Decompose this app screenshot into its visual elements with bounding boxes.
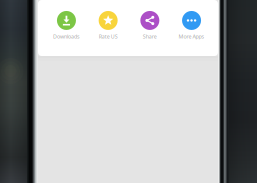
staticText: Share [143, 33, 157, 40]
button[interactable]: Rate US [87, 9, 129, 41]
staticText: Downloads [53, 33, 80, 40]
button[interactable]: Downloads [46, 9, 87, 41]
button[interactable]: More Apps [171, 9, 212, 41]
staticText: Rate US [99, 33, 118, 40]
button[interactable]: Share [129, 9, 171, 41]
staticText: More Apps [178, 33, 204, 40]
